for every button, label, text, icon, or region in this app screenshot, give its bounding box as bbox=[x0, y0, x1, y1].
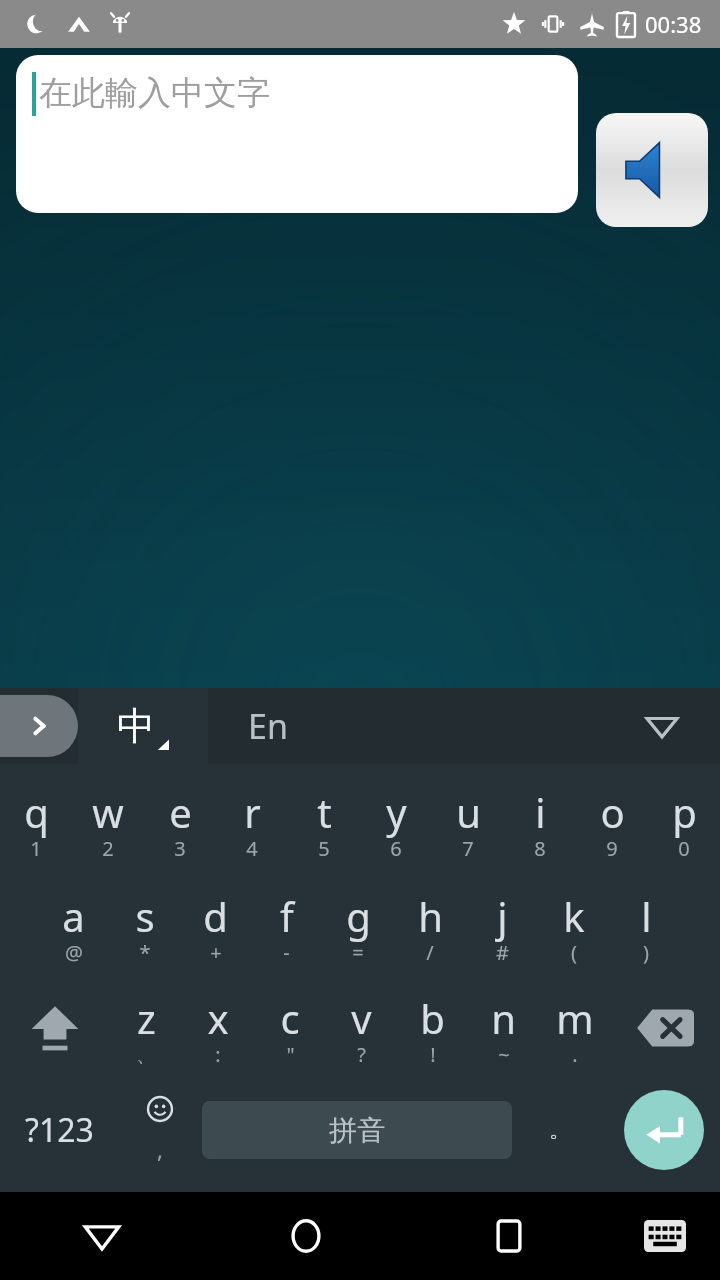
staticText: m bbox=[556, 991, 594, 1045]
staticText: 1 bbox=[30, 835, 42, 862]
button[interactable]: s bbox=[109, 874, 180, 978]
staticText: z bbox=[137, 991, 156, 1045]
button[interactable]: Recents bbox=[407, 1192, 610, 1280]
button[interactable]: a bbox=[38, 874, 109, 978]
staticText: d bbox=[203, 889, 228, 943]
button[interactable]: m bbox=[539, 978, 610, 1078]
staticText: q bbox=[24, 785, 49, 839]
staticText: a bbox=[62, 889, 85, 943]
staticText: @ bbox=[65, 939, 83, 966]
staticText: 8 bbox=[534, 835, 546, 862]
staticText: g bbox=[346, 889, 371, 943]
button[interactable]: r bbox=[216, 770, 288, 874]
staticText: 、 bbox=[136, 1042, 156, 1067]
button[interactable]: p bbox=[648, 770, 720, 874]
staticText: 在此輸入中文字 bbox=[39, 72, 270, 114]
button[interactable]: l bbox=[610, 874, 682, 978]
button[interactable]: h bbox=[394, 874, 466, 978]
button[interactable]: n bbox=[468, 978, 539, 1078]
staticText: 9 bbox=[606, 835, 618, 862]
staticText: t bbox=[317, 785, 332, 839]
button[interactable]: 拼音 bbox=[202, 1101, 512, 1159]
staticText: 4 bbox=[246, 835, 258, 862]
staticText: En bbox=[248, 703, 288, 749]
staticText: / bbox=[426, 939, 434, 966]
staticText: : bbox=[215, 1041, 221, 1068]
staticText: h bbox=[418, 889, 443, 943]
staticText: # bbox=[496, 939, 509, 966]
staticText: 00:38 bbox=[645, 9, 702, 39]
button[interactable]: i bbox=[504, 770, 576, 874]
staticText: 0 bbox=[678, 835, 690, 862]
button[interactable]: Back bbox=[0, 1192, 204, 1280]
staticText: i bbox=[535, 785, 546, 839]
button[interactable]: q bbox=[0, 770, 72, 874]
staticText: = bbox=[352, 939, 364, 966]
button[interactable]: w bbox=[72, 770, 144, 874]
staticText: 2 bbox=[102, 835, 114, 862]
button[interactable]: e bbox=[144, 770, 216, 874]
staticText: 3 bbox=[174, 835, 186, 862]
button[interactable]: 在此輸入中文字 bbox=[16, 55, 578, 213]
button[interactable]: v bbox=[326, 978, 397, 1078]
button[interactable]: z bbox=[110, 978, 182, 1078]
staticText: 7 bbox=[462, 835, 474, 862]
button[interactable]: Switch keyboard bbox=[610, 1192, 720, 1280]
button[interactable]: o bbox=[576, 770, 648, 874]
button[interactable]: d bbox=[180, 874, 251, 978]
button[interactable]: c bbox=[254, 978, 326, 1078]
staticText: c bbox=[280, 991, 300, 1045]
button[interactable]: j bbox=[466, 874, 538, 978]
button[interactable]: Backspace bbox=[610, 978, 720, 1078]
button[interactable]: x bbox=[182, 978, 254, 1078]
staticText: v bbox=[351, 991, 372, 1045]
button[interactable]: 中 bbox=[78, 688, 208, 764]
staticText: " bbox=[286, 1041, 295, 1068]
staticText: n bbox=[491, 991, 516, 1045]
button[interactable]: Hide keyboard bbox=[640, 704, 684, 748]
staticText: * bbox=[139, 939, 151, 966]
staticText: ~ bbox=[498, 1041, 510, 1068]
staticText: 5 bbox=[318, 835, 330, 862]
staticText: s bbox=[135, 889, 155, 943]
button[interactable]: Home bbox=[204, 1192, 407, 1280]
button[interactable]: y bbox=[360, 770, 432, 874]
button[interactable]: g bbox=[322, 874, 394, 978]
button[interactable]: Speak bbox=[596, 113, 708, 227]
staticText: b bbox=[420, 991, 445, 1045]
staticText: ?123 bbox=[25, 1108, 94, 1152]
staticText: l bbox=[641, 889, 652, 943]
staticText: p bbox=[672, 785, 697, 839]
staticText: f bbox=[280, 889, 294, 943]
staticText: o bbox=[600, 785, 625, 839]
staticText: 中 bbox=[117, 702, 155, 750]
button[interactable]: f bbox=[251, 874, 322, 978]
button[interactable]: Enter bbox=[608, 1078, 720, 1182]
staticText: w bbox=[92, 785, 124, 839]
button[interactable]: Emoji bbox=[118, 1078, 202, 1182]
staticText: r bbox=[244, 785, 261, 839]
staticText: j bbox=[497, 889, 508, 943]
button[interactable]: b bbox=[397, 978, 468, 1078]
staticText: 拼音 bbox=[329, 1113, 385, 1148]
staticText: ( bbox=[571, 939, 577, 966]
button[interactable]: 。 bbox=[512, 1078, 608, 1182]
staticText: y bbox=[386, 785, 407, 839]
button[interactable]: Expand bbox=[0, 695, 78, 757]
staticText: + bbox=[210, 939, 222, 966]
staticText: 6 bbox=[390, 835, 402, 862]
button[interactable]: ?123 bbox=[0, 1078, 118, 1182]
staticText: 。 bbox=[549, 1116, 571, 1144]
staticText: u bbox=[456, 785, 481, 839]
button[interactable]: k bbox=[538, 874, 610, 978]
button[interactable]: u bbox=[432, 770, 504, 874]
button[interactable]: En bbox=[248, 703, 288, 749]
staticText: , bbox=[157, 1134, 163, 1164]
button[interactable]: Shift bbox=[0, 978, 110, 1078]
staticText: . bbox=[572, 1041, 578, 1068]
staticText: x bbox=[207, 991, 229, 1045]
staticText: k bbox=[563, 889, 585, 943]
button[interactable]: t bbox=[288, 770, 360, 874]
staticText: ? bbox=[357, 1041, 366, 1068]
staticText: ) bbox=[643, 939, 649, 966]
